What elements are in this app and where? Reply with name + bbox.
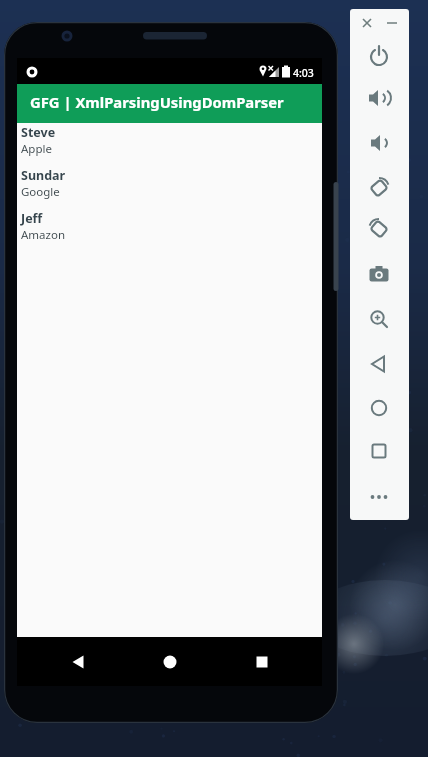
button[interactable] [158, 650, 182, 674]
staticText: 4:03 [293, 66, 314, 80]
button[interactable] [365, 260, 393, 288]
staticText: Apple [21, 141, 52, 157]
button[interactable] [365, 483, 393, 511]
button[interactable] [365, 42, 393, 70]
button[interactable] [365, 84, 393, 112]
button[interactable] [365, 350, 393, 378]
staticText: Jeff [21, 210, 43, 227]
button[interactable] [365, 305, 393, 333]
staticText: Sundar [21, 167, 66, 184]
staticText: Google [21, 184, 60, 200]
button[interactable] [66, 650, 90, 674]
button[interactable] [365, 214, 393, 242]
staticText: GFG | XmlParsingUsingDomParser [30, 92, 284, 112]
button[interactable] [250, 650, 274, 674]
button[interactable] [365, 437, 393, 465]
staticText: Amazon [21, 227, 66, 243]
button[interactable]: Sundar [17, 166, 322, 209]
button[interactable]: Steve [17, 123, 322, 166]
staticText: Steve [21, 124, 56, 141]
button[interactable] [365, 173, 393, 201]
button[interactable] [365, 394, 393, 422]
button[interactable] [365, 129, 393, 157]
button[interactable]: Jeff [17, 209, 322, 252]
